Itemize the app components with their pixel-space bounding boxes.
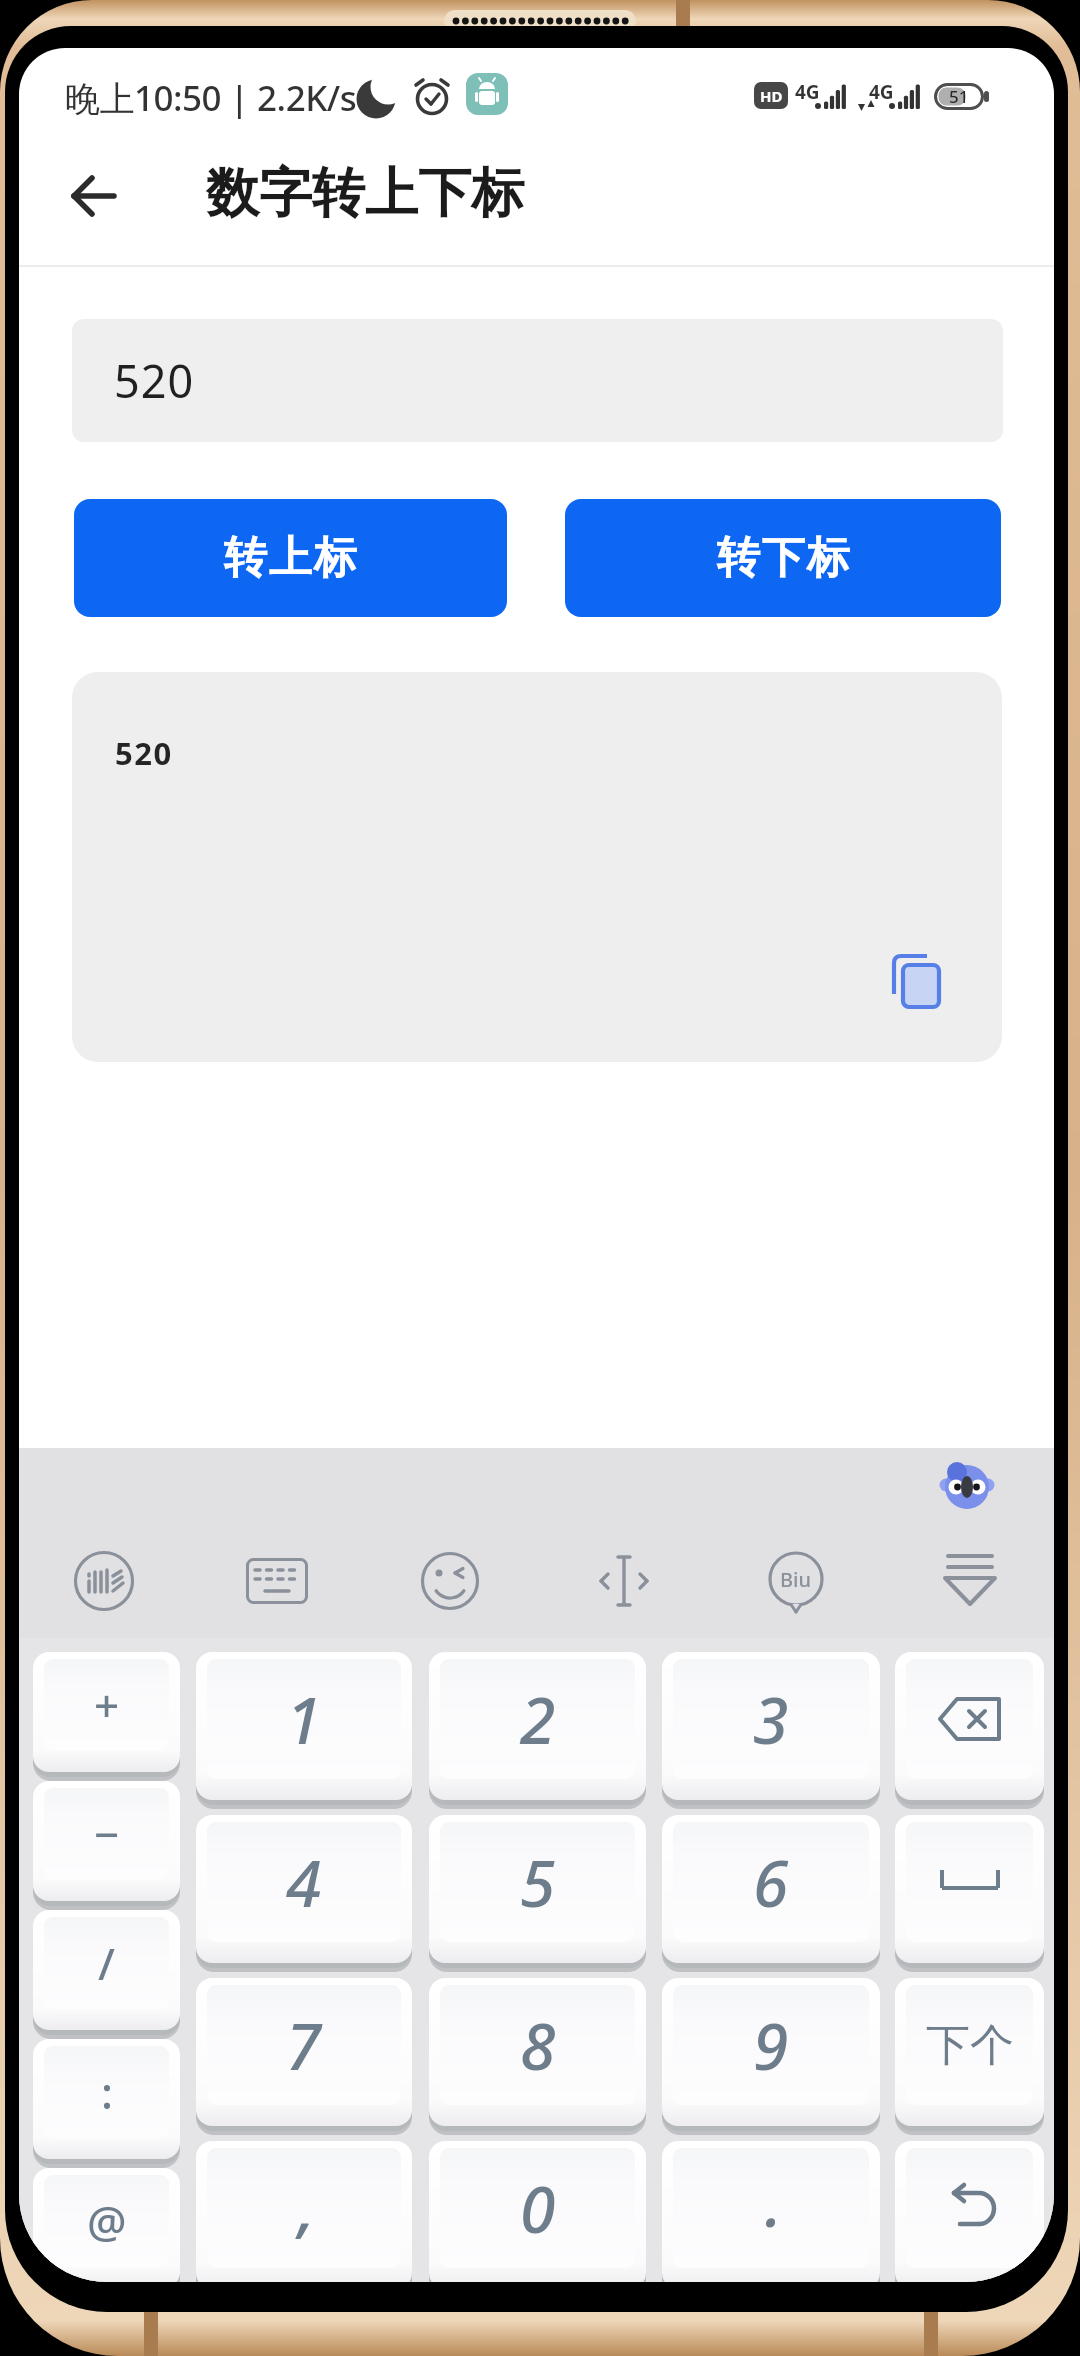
button[interactable] <box>71 174 117 218</box>
button[interactable]: 2 <box>429 1652 646 1800</box>
staticText: 6 <box>753 1839 789 1926</box>
button[interactable] <box>895 1652 1044 1800</box>
staticText: 1 <box>286 1676 322 1763</box>
staticText: 数字转上下标 <box>206 160 524 227</box>
staticText: 8 <box>520 2002 556 2089</box>
button[interactable]: 5 <box>429 1815 646 1963</box>
staticText: 7 <box>286 2002 322 2089</box>
staticText: − <box>94 1804 120 1864</box>
button[interactable]: 转上标 <box>74 499 507 617</box>
button[interactable]: 1 <box>196 1652 412 1800</box>
button[interactable] <box>597 1553 651 1609</box>
button[interactable] <box>420 1551 480 1611</box>
button[interactable]: − <box>33 1781 180 1901</box>
staticText: 520 <box>114 350 195 411</box>
button[interactable]: 0 <box>429 2141 646 2282</box>
button[interactable] <box>246 1558 308 1604</box>
button[interactable]: Biu <box>767 1552 825 1616</box>
staticText: 9 <box>753 2002 789 2089</box>
button[interactable]: / <box>33 1910 180 2030</box>
staticText: @ <box>87 2191 127 2251</box>
button[interactable]: 520 <box>72 319 1003 442</box>
button[interactable]: 转下标 <box>565 499 1001 617</box>
button[interactable]: 7 <box>196 1978 412 2126</box>
staticText: 2 <box>520 1676 556 1763</box>
staticText: 520 <box>115 732 173 774</box>
button[interactable]: 8 <box>429 1978 646 2126</box>
staticText: 51 <box>949 85 969 108</box>
button[interactable]: 9 <box>662 1978 880 2126</box>
button[interactable]: 3 <box>662 1652 880 1800</box>
button[interactable]: , <box>196 2141 412 2282</box>
staticText: 4 <box>286 1839 322 1926</box>
button[interactable]: 4 <box>196 1815 412 1963</box>
button[interactable]: . <box>662 2141 880 2282</box>
staticText: 4G <box>795 79 820 105</box>
button[interactable]: 下个 <box>895 1978 1044 2126</box>
staticText: , <box>298 2163 315 2250</box>
button[interactable] <box>941 1552 999 1610</box>
staticText: 转下标 <box>716 531 851 585</box>
staticText: : <box>101 2062 113 2122</box>
button[interactable]: : <box>33 2039 180 2159</box>
staticText: 0 <box>520 2165 556 2252</box>
button[interactable]: + <box>33 1652 180 1772</box>
staticText: 转上标 <box>223 531 358 585</box>
staticText: 5 <box>520 1839 556 1926</box>
staticText: . <box>765 2159 782 2246</box>
button[interactable] <box>942 1463 992 1511</box>
button[interactable] <box>895 2141 1044 2282</box>
button[interactable] <box>892 954 942 1010</box>
staticText: 4G <box>869 79 894 105</box>
staticText: + <box>94 1675 120 1735</box>
button[interactable] <box>73 1550 135 1612</box>
staticText: / <box>98 1933 115 1993</box>
staticText: HD <box>760 86 783 106</box>
staticText: 3 <box>753 1676 789 1763</box>
staticText: Biu <box>780 1566 812 1593</box>
staticText: 晚上10:50 | 2.2K/s <box>65 74 357 122</box>
staticText: 下个 <box>926 2018 1014 2073</box>
button[interactable] <box>895 1815 1044 1963</box>
button[interactable]: @ <box>33 2168 180 2282</box>
button[interactable]: 6 <box>662 1815 880 1963</box>
